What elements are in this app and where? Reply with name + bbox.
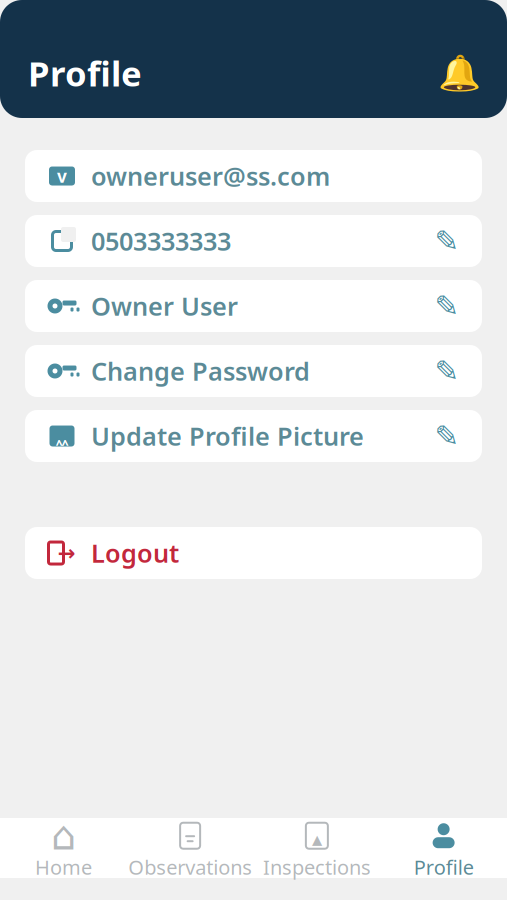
button[interactable]: 0503333333	[25, 215, 482, 267]
staticText: Profile	[28, 50, 142, 96]
button[interactable]: ▲	[253, 816, 380, 886]
staticText: 0503333333	[91, 224, 231, 258]
button[interactable]: Change Password	[25, 345, 482, 397]
staticText: Owner User	[91, 289, 238, 323]
staticText: Update Profile Picture	[91, 419, 364, 453]
button[interactable]: v	[25, 150, 482, 202]
button[interactable]: ⌂	[0, 816, 127, 886]
staticText: ✎	[434, 419, 459, 453]
staticText: owneruser@ss.com	[91, 159, 330, 193]
button[interactable]: Observations	[127, 816, 254, 886]
staticText: 🔔	[437, 53, 480, 93]
staticText: ✎	[434, 289, 459, 323]
staticText: ✎	[434, 224, 459, 258]
staticText: ▲	[312, 832, 322, 847]
staticText: Home	[35, 854, 92, 880]
button[interactable]: Owner User	[25, 280, 482, 332]
button[interactable]: →	[25, 527, 482, 579]
staticText: Change Password	[91, 354, 310, 388]
staticText: ⌂	[51, 813, 76, 858]
button[interactable]: Notifications	[439, 53, 479, 93]
staticText: ✎	[434, 354, 459, 388]
button[interactable]: Profile	[380, 816, 507, 886]
button[interactable]: ^^	[25, 410, 482, 462]
staticText: Logout	[91, 536, 179, 570]
staticText: Inspections	[263, 854, 371, 880]
staticText: ^^	[56, 436, 68, 452]
staticText: Observations	[128, 854, 252, 880]
staticText: Profile	[414, 854, 474, 880]
staticText: →	[57, 541, 75, 565]
staticText: v	[57, 164, 67, 187]
